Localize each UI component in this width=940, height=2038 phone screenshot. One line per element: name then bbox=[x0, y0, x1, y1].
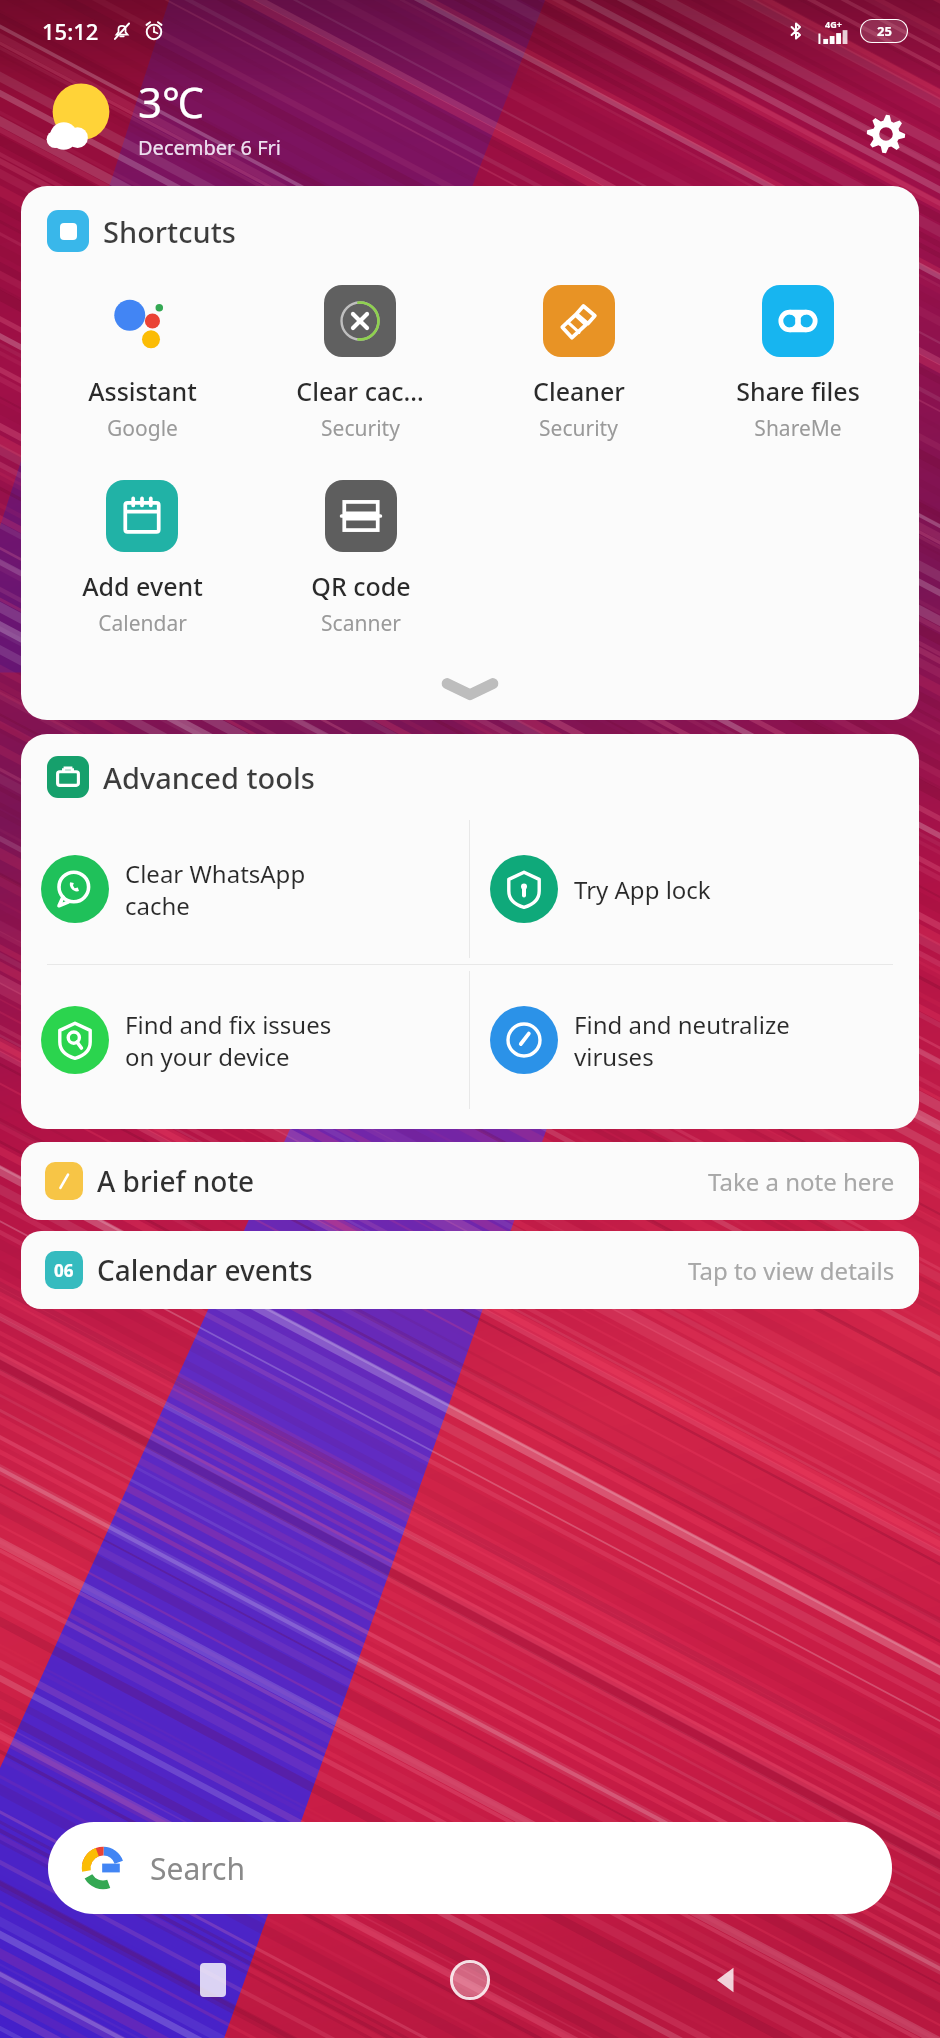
button[interactable]: Find and neutralize viruses bbox=[470, 965, 919, 1115]
staticText: 06 bbox=[54, 1259, 74, 1282]
staticText: Security bbox=[539, 414, 618, 443]
staticText: Advanced tools bbox=[103, 758, 315, 797]
button[interactable]: Assistant bbox=[33, 278, 251, 447]
staticText: Shortcuts bbox=[103, 212, 236, 251]
staticText: A brief note bbox=[97, 1162, 255, 1200]
staticText: 25 bbox=[877, 22, 892, 40]
button[interactable]: Clear cac… bbox=[251, 278, 469, 447]
button[interactable]: Search bbox=[48, 1822, 892, 1914]
button[interactable]: Expand bbox=[21, 666, 919, 710]
button[interactable]: Find and fix issues on your device bbox=[21, 965, 469, 1115]
staticText: Assistant bbox=[88, 374, 197, 408]
staticText: Share files bbox=[736, 374, 860, 408]
staticText: Take a note here bbox=[708, 1165, 895, 1198]
staticText: Security bbox=[321, 414, 400, 443]
staticText: 3℃ bbox=[138, 73, 204, 130]
button[interactable]: Home bbox=[426, 1940, 514, 2020]
staticText: Scanner bbox=[321, 609, 401, 638]
button[interactable]: QR code bbox=[251, 473, 470, 642]
staticText: Find and neutralize viruses bbox=[574, 1008, 790, 1073]
button[interactable]: Try App lock bbox=[470, 814, 919, 964]
button[interactable]: Add event bbox=[33, 473, 251, 642]
button[interactable]: A brief note bbox=[21, 1142, 919, 1220]
button[interactable]: Clear WhatsApp cache bbox=[21, 814, 469, 964]
button[interactable]: Share files bbox=[688, 278, 907, 447]
staticText: QR code bbox=[311, 569, 411, 603]
staticText: Add event bbox=[82, 569, 203, 603]
staticText: 15:12 bbox=[42, 16, 99, 46]
staticText: Cleaner bbox=[533, 374, 625, 408]
staticText: Find and fix issues on your device bbox=[125, 1008, 332, 1073]
staticText: Try App lock bbox=[574, 873, 711, 906]
staticText: Clear WhatsApp cache bbox=[125, 857, 306, 922]
staticText: Tap to view details bbox=[688, 1254, 895, 1287]
staticText: December 6 Fri bbox=[138, 134, 281, 161]
button[interactable]: Back bbox=[683, 1940, 771, 2020]
button[interactable]: Settings bbox=[858, 106, 914, 162]
button[interactable]: Shortcuts bbox=[47, 210, 919, 252]
staticText: 4G+ bbox=[825, 18, 842, 30]
button[interactable]: Advanced tools bbox=[47, 756, 919, 798]
staticText: Calendar events bbox=[97, 1251, 313, 1289]
button[interactable]: Recents bbox=[169, 1940, 257, 2020]
button[interactable]: Cleaner bbox=[469, 278, 688, 447]
staticText: Search bbox=[150, 1848, 245, 1889]
staticText: Clear cac… bbox=[296, 374, 424, 408]
button[interactable]: 06 bbox=[21, 1231, 919, 1309]
staticText: ShareMe bbox=[754, 414, 842, 443]
staticText: Google bbox=[107, 414, 178, 443]
staticText: Calendar bbox=[98, 609, 187, 638]
